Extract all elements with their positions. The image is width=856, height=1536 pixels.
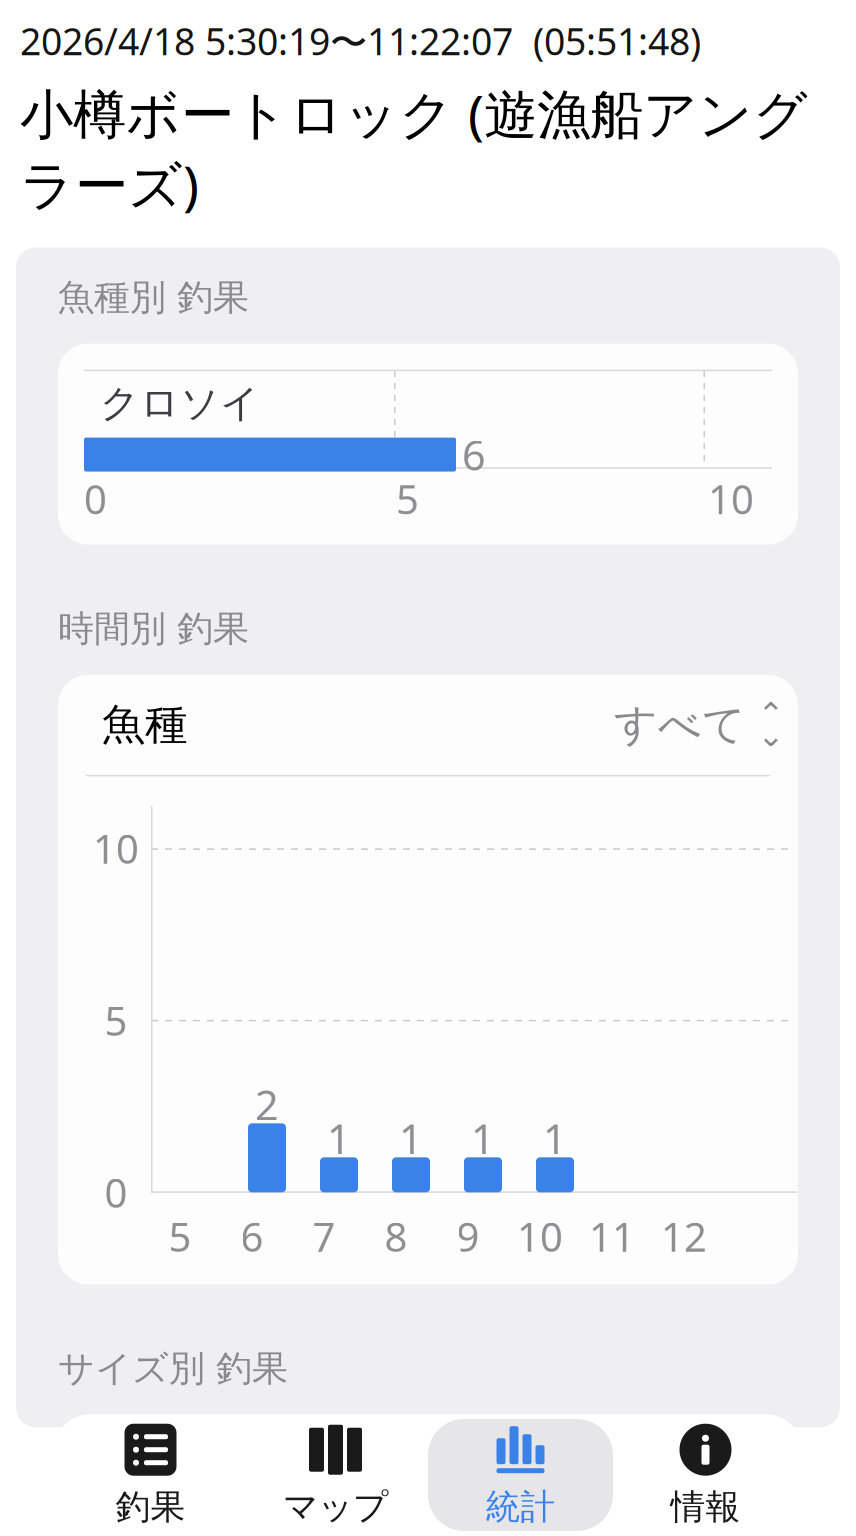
staticText: 10 <box>708 472 754 525</box>
staticText: 5 <box>104 994 127 1047</box>
staticText: 情報 <box>670 1486 740 1528</box>
staticText: 1 <box>399 1111 423 1166</box>
staticText: 0 <box>84 472 107 525</box>
staticText: ⌃ <box>757 696 784 732</box>
staticText: 魚種 <box>102 699 188 751</box>
staticText: 魚種 <box>88 1438 174 1491</box>
staticText: サイズ別 釣果 <box>58 1346 288 1391</box>
staticText: 2 <box>255 1077 279 1132</box>
staticText: ⌄ <box>757 717 784 753</box>
staticText: 魚種別 釣果 <box>58 275 249 320</box>
staticText: 12 <box>661 1210 707 1263</box>
staticText: 5 <box>168 1210 191 1263</box>
staticText: すべて <box>600 1438 732 1491</box>
button[interactable]: 魚種 <box>58 1415 798 1515</box>
button[interactable]: 魚種 <box>72 675 812 775</box>
staticText: クロソイ <box>100 380 260 427</box>
staticText: 1 <box>471 1111 495 1166</box>
button[interactable]: 情報 <box>613 1419 798 1531</box>
staticText: 8 <box>384 1210 407 1263</box>
staticText: 10 <box>517 1210 563 1263</box>
staticText: 9 <box>456 1210 479 1263</box>
staticText: 2026/4/18 5:30:19〜11:22:07 (05:51:48) <box>20 16 701 66</box>
staticText: 0 <box>104 1166 127 1219</box>
button[interactable]: 統計 <box>428 1419 613 1531</box>
button[interactable]: マップ <box>243 1419 428 1531</box>
staticText: 時間別 釣果 <box>58 607 249 651</box>
staticText: 11 <box>589 1210 635 1263</box>
staticText: 統計 <box>485 1486 555 1528</box>
staticText: 7 <box>312 1210 335 1263</box>
staticText: マップ <box>283 1486 388 1528</box>
staticText: すべて <box>614 699 746 751</box>
staticText: 1 <box>543 1111 567 1166</box>
button[interactable]: 集計 <box>58 1516 798 1536</box>
staticText: 釣果 <box>115 1486 185 1528</box>
staticText: 10 <box>93 822 139 875</box>
staticText: 5 <box>396 472 419 525</box>
staticText: 1 <box>327 1111 351 1166</box>
staticText: 小樽ボートロック (遊漁船アングラーズ) <box>20 78 808 219</box>
staticText: 6 <box>240 1210 263 1263</box>
button[interactable]: 釣果 <box>58 1419 243 1531</box>
staticText: 6 <box>462 427 486 482</box>
